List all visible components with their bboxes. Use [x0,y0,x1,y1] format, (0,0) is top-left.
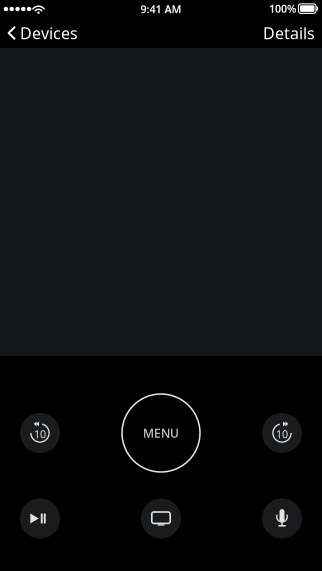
staticText: Devices [20,22,78,44]
button[interactable]: Details [253,18,322,48]
staticText: 10 [276,427,288,441]
button[interactable]: Siri [262,498,302,538]
staticText: 10 [34,427,46,441]
staticText: Details [263,22,315,44]
button[interactable]: Skip forward 10 seconds [262,413,302,453]
staticText: 100% [269,1,296,16]
button[interactable]: TV [141,498,181,538]
button[interactable]: Devices [0,18,88,48]
button[interactable]: MENU [122,394,200,472]
button[interactable]: Play or pause [20,498,60,538]
staticText: MENU [143,425,179,441]
button[interactable]: Skip back 10 seconds [20,413,60,453]
staticText: 9:41 AM [140,2,181,16]
